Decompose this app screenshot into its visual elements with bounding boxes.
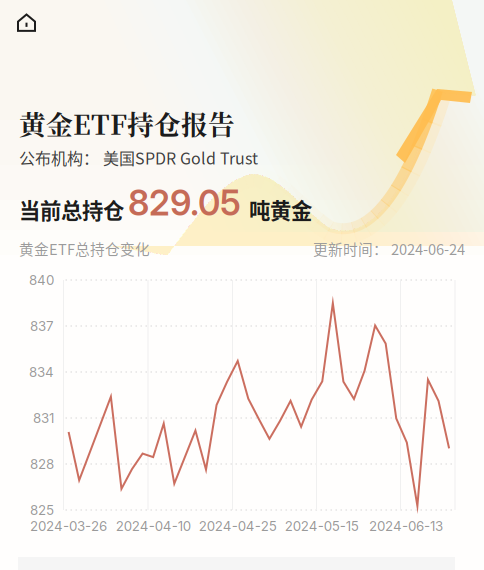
staticText: 829.05 — [128, 182, 241, 224]
staticText: 825 — [30, 502, 54, 518]
staticText: 公布机构： 美国SPDR Gold Trust — [19, 146, 258, 169]
staticText: 2024-05-15 — [285, 518, 359, 534]
staticText: 吨黄金 — [249, 194, 312, 225]
staticText: 2024-04-25 — [199, 518, 277, 534]
staticText: 当前总持仓 — [19, 194, 124, 225]
staticText: 837 — [30, 318, 54, 334]
staticText: 黄金ETF总持仓变化 — [19, 238, 150, 259]
staticText: 828 — [30, 456, 54, 472]
staticText: 834 — [29, 364, 54, 380]
staticText: 2024-06-13 — [369, 518, 443, 534]
staticText: 840 — [29, 272, 54, 288]
staticText: 更新时间： 2024-06-24 — [313, 238, 465, 259]
button[interactable]: Home — [0, 0, 42, 42]
staticText: 黄金ETF持仓报告 — [19, 104, 235, 142]
staticText: 2024-03-26 — [30, 518, 107, 534]
staticText: 2024-04-10 — [116, 518, 191, 534]
staticText: 831 — [33, 410, 54, 426]
